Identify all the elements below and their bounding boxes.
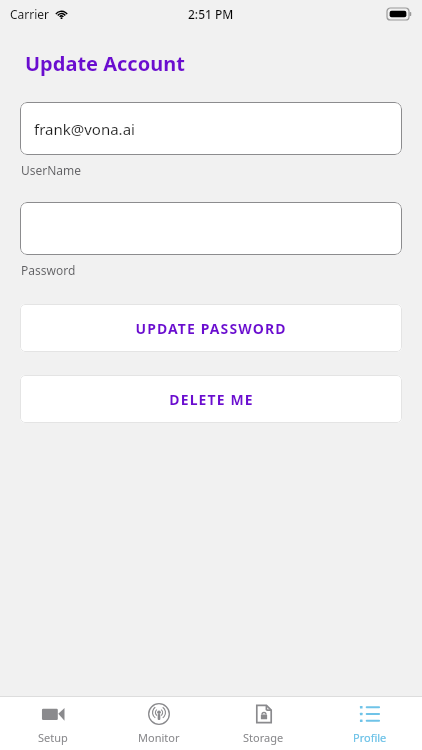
button[interactable]: Storage bbox=[211, 697, 316, 750]
button[interactable] bbox=[20, 202, 402, 255]
staticText: UPDATE PASSWORD bbox=[135, 319, 287, 338]
staticText: Storage bbox=[243, 730, 284, 745]
button[interactable]: Monitor bbox=[106, 697, 211, 750]
staticText: frank@vona.ai bbox=[34, 119, 135, 139]
staticText: 2:51 PM bbox=[188, 6, 234, 22]
button[interactable]: UPDATE PASSWORD bbox=[20, 304, 402, 352]
button[interactable]: Profile bbox=[317, 697, 422, 750]
button[interactable]: Setup bbox=[0, 697, 105, 750]
staticText: DELETE ME bbox=[169, 390, 254, 409]
staticText: UserName bbox=[21, 162, 82, 178]
staticText: Carrier bbox=[10, 6, 50, 22]
staticText: Update Account bbox=[25, 50, 185, 77]
staticText: Monitor bbox=[138, 730, 180, 745]
staticText: Password bbox=[21, 262, 76, 278]
staticText: Setup bbox=[38, 730, 68, 745]
staticText: Profile bbox=[353, 730, 387, 745]
button[interactable]: frank@vona.ai bbox=[20, 102, 402, 155]
button[interactable]: DELETE ME bbox=[20, 375, 402, 423]
